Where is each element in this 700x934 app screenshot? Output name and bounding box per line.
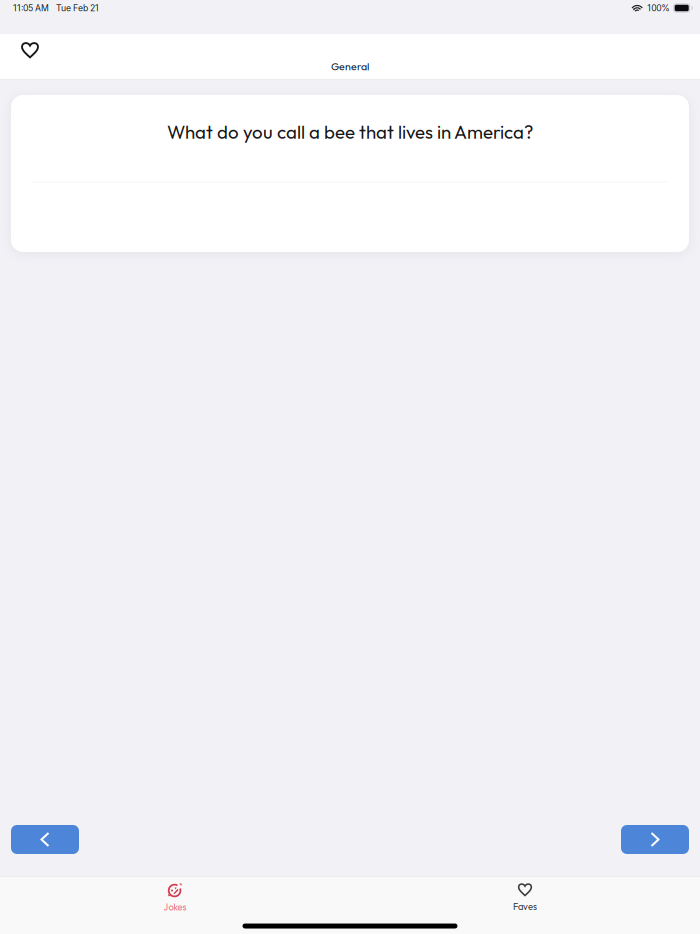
staticText: General <box>331 60 369 73</box>
staticText: Jokes <box>163 901 186 913</box>
button[interactable]: Next joke <box>621 825 689 854</box>
button[interactable]: Faves <box>350 873 700 915</box>
staticText: Faves <box>513 901 537 912</box>
staticText: Tue Feb 21 <box>56 3 99 13</box>
staticText: 11:05 AM <box>13 3 49 13</box>
button[interactable]: Favorites <box>11 34 49 66</box>
staticText: What do you call a bee that lives in Ame… <box>167 120 533 143</box>
button[interactable]: Previous joke <box>11 825 79 854</box>
button[interactable]: Jokes <box>0 873 350 915</box>
staticText: 100% <box>647 3 670 13</box>
